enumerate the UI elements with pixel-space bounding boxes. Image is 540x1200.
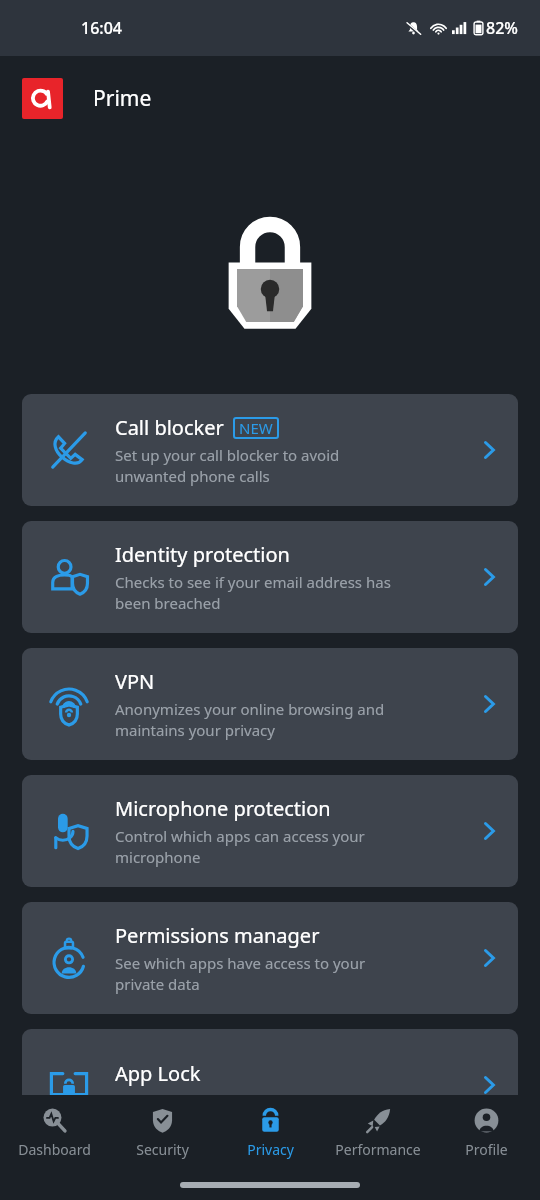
staticText: Prime xyxy=(93,84,152,113)
other: Open Call blocker xyxy=(460,394,518,506)
staticText: Identity protection xyxy=(115,541,290,568)
button[interactable]: Microphone protection xyxy=(22,775,518,887)
staticText: Checks to see if your email address has … xyxy=(115,572,391,614)
other: Open Identity protection xyxy=(460,521,518,633)
staticText: Control which apps can access your micro… xyxy=(115,826,365,868)
staticText: Control which apps are protected xyxy=(115,1091,350,1111)
staticText: Anonymizes your online browsing and main… xyxy=(115,699,385,741)
button[interactable]: App Lock xyxy=(22,1029,518,1141)
staticText: App Lock xyxy=(115,1060,201,1087)
other: Open Permissions manager xyxy=(460,902,518,1014)
button[interactable]: Call blocker xyxy=(22,394,518,506)
button[interactable]: Profile xyxy=(432,1095,540,1169)
button[interactable]: Permissions manager xyxy=(22,902,518,1014)
button[interactable]: Privacy xyxy=(216,1095,324,1169)
staticText: Call blocker xyxy=(115,414,224,441)
button[interactable]: Security xyxy=(108,1095,216,1169)
staticText: Permissions manager xyxy=(115,922,320,949)
staticText: Set up your call blocker to avoid unwant… xyxy=(115,445,340,487)
staticText: NEW xyxy=(239,418,273,438)
staticText: Performance xyxy=(335,1140,421,1159)
staticText: See which apps have access to your priva… xyxy=(115,953,366,995)
staticText: Privacy xyxy=(247,1140,294,1159)
staticText: VPN xyxy=(115,668,155,695)
staticText: 16:04 xyxy=(81,17,122,39)
staticText: Microphone protection xyxy=(115,795,331,822)
button[interactable]: Dashboard xyxy=(0,1095,108,1169)
staticText: Profile xyxy=(465,1140,508,1159)
other: Open App Lock xyxy=(460,1029,518,1141)
other: Open VPN xyxy=(460,648,518,760)
other: Open Microphone protection xyxy=(460,775,518,887)
staticText: 82% xyxy=(486,17,518,39)
staticText: Security xyxy=(136,1140,189,1159)
button[interactable]: Performance xyxy=(324,1095,432,1169)
staticText: Dashboard xyxy=(18,1140,91,1159)
button[interactable]: Identity protection xyxy=(22,521,518,633)
button[interactable]: VPN xyxy=(22,648,518,760)
